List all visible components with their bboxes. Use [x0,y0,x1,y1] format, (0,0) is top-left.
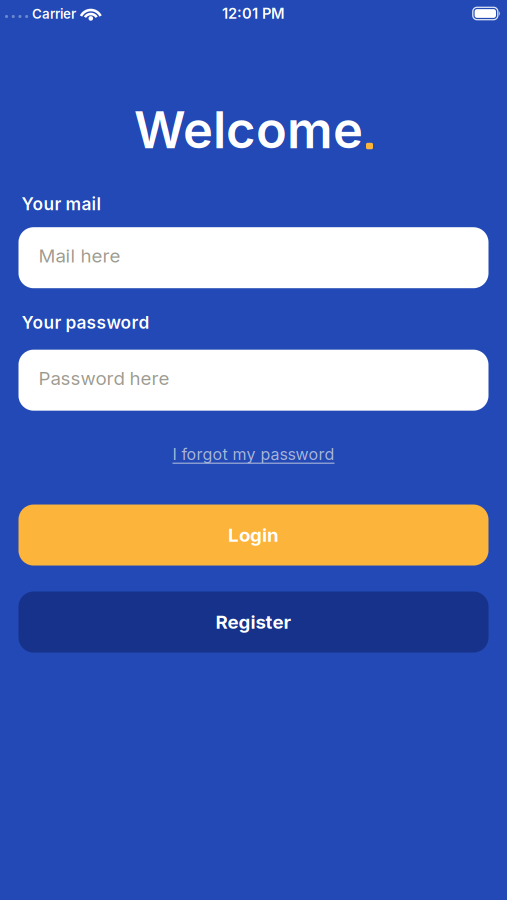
textField[interactable]: Password here [38,367,488,389]
staticText: Carrier [32,6,76,22]
staticText: Password here [38,367,169,389]
staticText: Register [215,611,291,633]
staticText: 12:01 PM [222,5,285,22]
staticText: Welcome [134,100,363,160]
button[interactable]: Login [18,504,488,565]
staticText: Login [228,524,279,546]
staticText: Your password [21,312,149,333]
staticText: Mail here [38,245,120,267]
textField[interactable]: Mail here [38,245,488,267]
button[interactable]: Register [18,591,488,652]
staticText: I forgot my password [172,445,334,464]
button[interactable]: I forgot my password [172,445,334,464]
staticText: Your mail [21,194,101,214]
